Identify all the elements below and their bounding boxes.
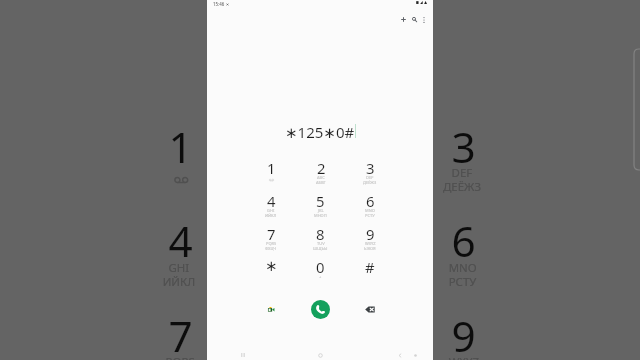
staticText: ABC xyxy=(317,175,325,180)
button[interactable]: 6 xyxy=(345,191,394,224)
staticText: MNO xyxy=(365,208,375,213)
button[interactable]: 4 xyxy=(108,211,251,306)
button[interactable]: 3 xyxy=(345,158,394,191)
staticText: 1 xyxy=(267,158,276,178)
staticText: РСТУ xyxy=(449,274,477,289)
button[interactable]: 3 xyxy=(391,117,532,211)
staticText: АБВГ xyxy=(316,180,326,185)
staticText: TUV xyxy=(317,241,325,246)
button[interactable]: 7 xyxy=(108,306,251,360)
staticText: 9 xyxy=(366,224,375,244)
staticText: ИЙКЛ xyxy=(163,274,197,289)
staticText: MNO xyxy=(449,260,477,274)
staticText: 5 xyxy=(309,211,334,269)
staticText: ШЩЪЫ xyxy=(313,246,328,251)
staticText: GHI xyxy=(267,208,275,213)
staticText: GHI xyxy=(168,260,191,274)
button[interactable]: Recent apps xyxy=(232,347,253,360)
staticText: 8 xyxy=(316,224,325,244)
button[interactable]: Back xyxy=(389,347,410,360)
button[interactable]: 4 xyxy=(246,191,296,224)
staticText: 4 xyxy=(267,191,276,211)
button[interactable]: 7 xyxy=(246,224,296,257)
staticText: DEF xyxy=(366,175,374,180)
staticText: РСТУ xyxy=(365,213,375,218)
button[interactable]: 8 xyxy=(251,306,391,360)
staticText: 6 xyxy=(452,211,477,269)
staticText: 15:46 xyxy=(213,1,225,7)
button[interactable]: 8 xyxy=(296,224,345,257)
button[interactable]: 1 xyxy=(108,117,251,211)
staticText: 2 xyxy=(311,117,337,174)
staticText: TUV xyxy=(311,354,334,360)
staticText: ∗125∗0# xyxy=(220,14,420,63)
staticText: ABC xyxy=(311,166,334,180)
button[interactable]: Call xyxy=(311,300,330,319)
button[interactable]: 1 xyxy=(246,158,296,191)
button[interactable]: 0 xyxy=(296,257,345,290)
button[interactable]: 9 xyxy=(345,224,394,257)
staticText: ДЕЁЖЗ xyxy=(363,180,377,185)
staticText: 7 xyxy=(267,224,276,244)
button[interactable]: Add contact xyxy=(393,9,414,30)
button[interactable]: # xyxy=(345,257,394,290)
staticText: ЬЭЮЯ xyxy=(364,246,376,251)
staticText: ДЕЁЖЗ xyxy=(443,180,483,194)
staticText: ФХЦЧ xyxy=(265,246,277,251)
staticText: 7 xyxy=(168,306,194,360)
staticText: + xyxy=(319,274,322,279)
button[interactable]: 2 xyxy=(251,117,391,211)
staticText: WXYZ xyxy=(365,241,376,246)
staticText: WXYZ xyxy=(449,354,480,360)
staticText: МНОП xyxy=(314,213,327,218)
button[interactable]: More options xyxy=(413,9,434,30)
staticText: 5 xyxy=(316,191,325,211)
staticText: DEF xyxy=(452,166,474,180)
staticText: 3 xyxy=(366,158,375,178)
staticText: АБВГ xyxy=(309,180,337,194)
staticText: # xyxy=(365,257,375,277)
button[interactable]: Backspace xyxy=(345,294,394,324)
button[interactable]: Home xyxy=(310,347,331,360)
button[interactable]: 5 xyxy=(296,191,345,224)
staticText: PQRS xyxy=(266,241,277,246)
staticText: PQRS xyxy=(166,354,197,360)
staticText: ИЙКЛ xyxy=(265,213,277,218)
staticText: JKL xyxy=(314,260,331,274)
staticText: 4 xyxy=(168,211,194,269)
staticText: 0 xyxy=(316,257,325,277)
button[interactable]: 6 xyxy=(391,211,532,306)
button[interactable]: Video call xyxy=(246,294,296,324)
button[interactable]: Search xyxy=(404,9,425,30)
staticText: 8 xyxy=(309,306,334,360)
staticText: 3 xyxy=(452,117,477,174)
button[interactable]: ∗ xyxy=(246,257,296,290)
staticText: 2 xyxy=(317,158,326,178)
staticText: ∗125∗0# xyxy=(285,122,355,139)
staticText: ∗ xyxy=(265,257,278,274)
button[interactable]: 2 xyxy=(296,158,345,191)
staticText: JKL xyxy=(318,208,324,213)
staticText: 9 xyxy=(452,306,477,360)
staticText: 1 xyxy=(168,117,194,174)
staticText: 6 xyxy=(366,191,375,211)
button[interactable]: 5 xyxy=(251,211,391,306)
button[interactable]: 9 xyxy=(391,306,532,360)
